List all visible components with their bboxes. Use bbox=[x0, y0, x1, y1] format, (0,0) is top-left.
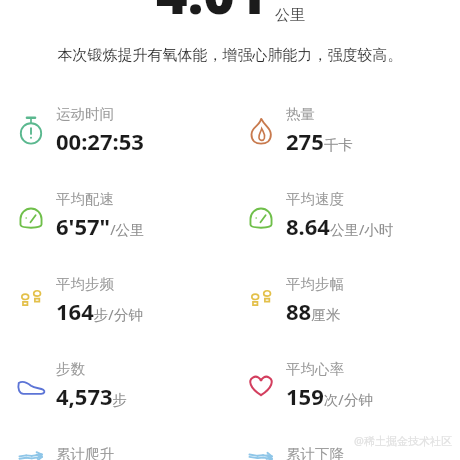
other: 累计爬升 bbox=[14, 453, 48, 460]
staticText: 平均心率 bbox=[286, 360, 344, 378]
other: 步数 bbox=[14, 368, 48, 402]
staticText: 平均速度 bbox=[286, 190, 344, 208]
staticText: 159次/分钟 bbox=[286, 381, 373, 411]
staticText: 平均配速 bbox=[56, 190, 114, 208]
button[interactable]: 热量 bbox=[230, 91, 460, 176]
staticText: 6'57"/公里 bbox=[56, 211, 145, 241]
other: 平均速度 bbox=[244, 198, 278, 232]
other: 运动时间 bbox=[14, 113, 48, 147]
other: 平均步频 bbox=[14, 283, 48, 317]
other: 累计下降 bbox=[244, 453, 278, 460]
staticText: 累计下降 bbox=[286, 445, 344, 460]
staticText: 热量 bbox=[286, 105, 315, 123]
staticText: 平均步幅 bbox=[286, 275, 344, 293]
button[interactable]: 平均步幅 bbox=[230, 261, 460, 346]
button[interactable]: 平均步频 bbox=[0, 261, 230, 346]
staticText: @稀土掘金技术社区 bbox=[354, 433, 452, 448]
other: 平均心率 bbox=[244, 368, 278, 402]
staticText: 运动时间 bbox=[56, 105, 114, 123]
staticText: 8.64公里/小时 bbox=[286, 211, 394, 241]
other: 平均配速 bbox=[14, 198, 48, 232]
staticText: 步数 bbox=[56, 360, 85, 378]
other: 热量 bbox=[244, 113, 278, 147]
staticText: 本次锻炼提升有氧体能，增强心肺能力，强度较高。 bbox=[10, 46, 450, 65]
button[interactable]: 平均心率 bbox=[230, 346, 460, 431]
staticText: 00:27:53 bbox=[56, 126, 144, 156]
button[interactable]: 运动时间 bbox=[0, 91, 230, 176]
button[interactable]: 平均速度 bbox=[230, 176, 460, 261]
other: 平均步幅 bbox=[244, 283, 278, 317]
staticText: 公里 bbox=[275, 6, 305, 25]
staticText: 164步/分钟 bbox=[56, 296, 143, 326]
button[interactable]: 平均配速 bbox=[0, 176, 230, 261]
staticText: 4,573步 bbox=[56, 381, 128, 411]
staticText: 4.01 bbox=[156, 0, 267, 30]
staticText: 275千卡 bbox=[286, 126, 353, 156]
button[interactable]: 累计下降 bbox=[230, 431, 460, 460]
button[interactable]: 累计爬升 bbox=[0, 431, 230, 460]
staticText: 88厘米 bbox=[286, 296, 341, 326]
staticText: 平均步频 bbox=[56, 275, 114, 293]
button[interactable]: 步数 bbox=[0, 346, 230, 431]
staticText: 累计爬升 bbox=[56, 445, 114, 460]
